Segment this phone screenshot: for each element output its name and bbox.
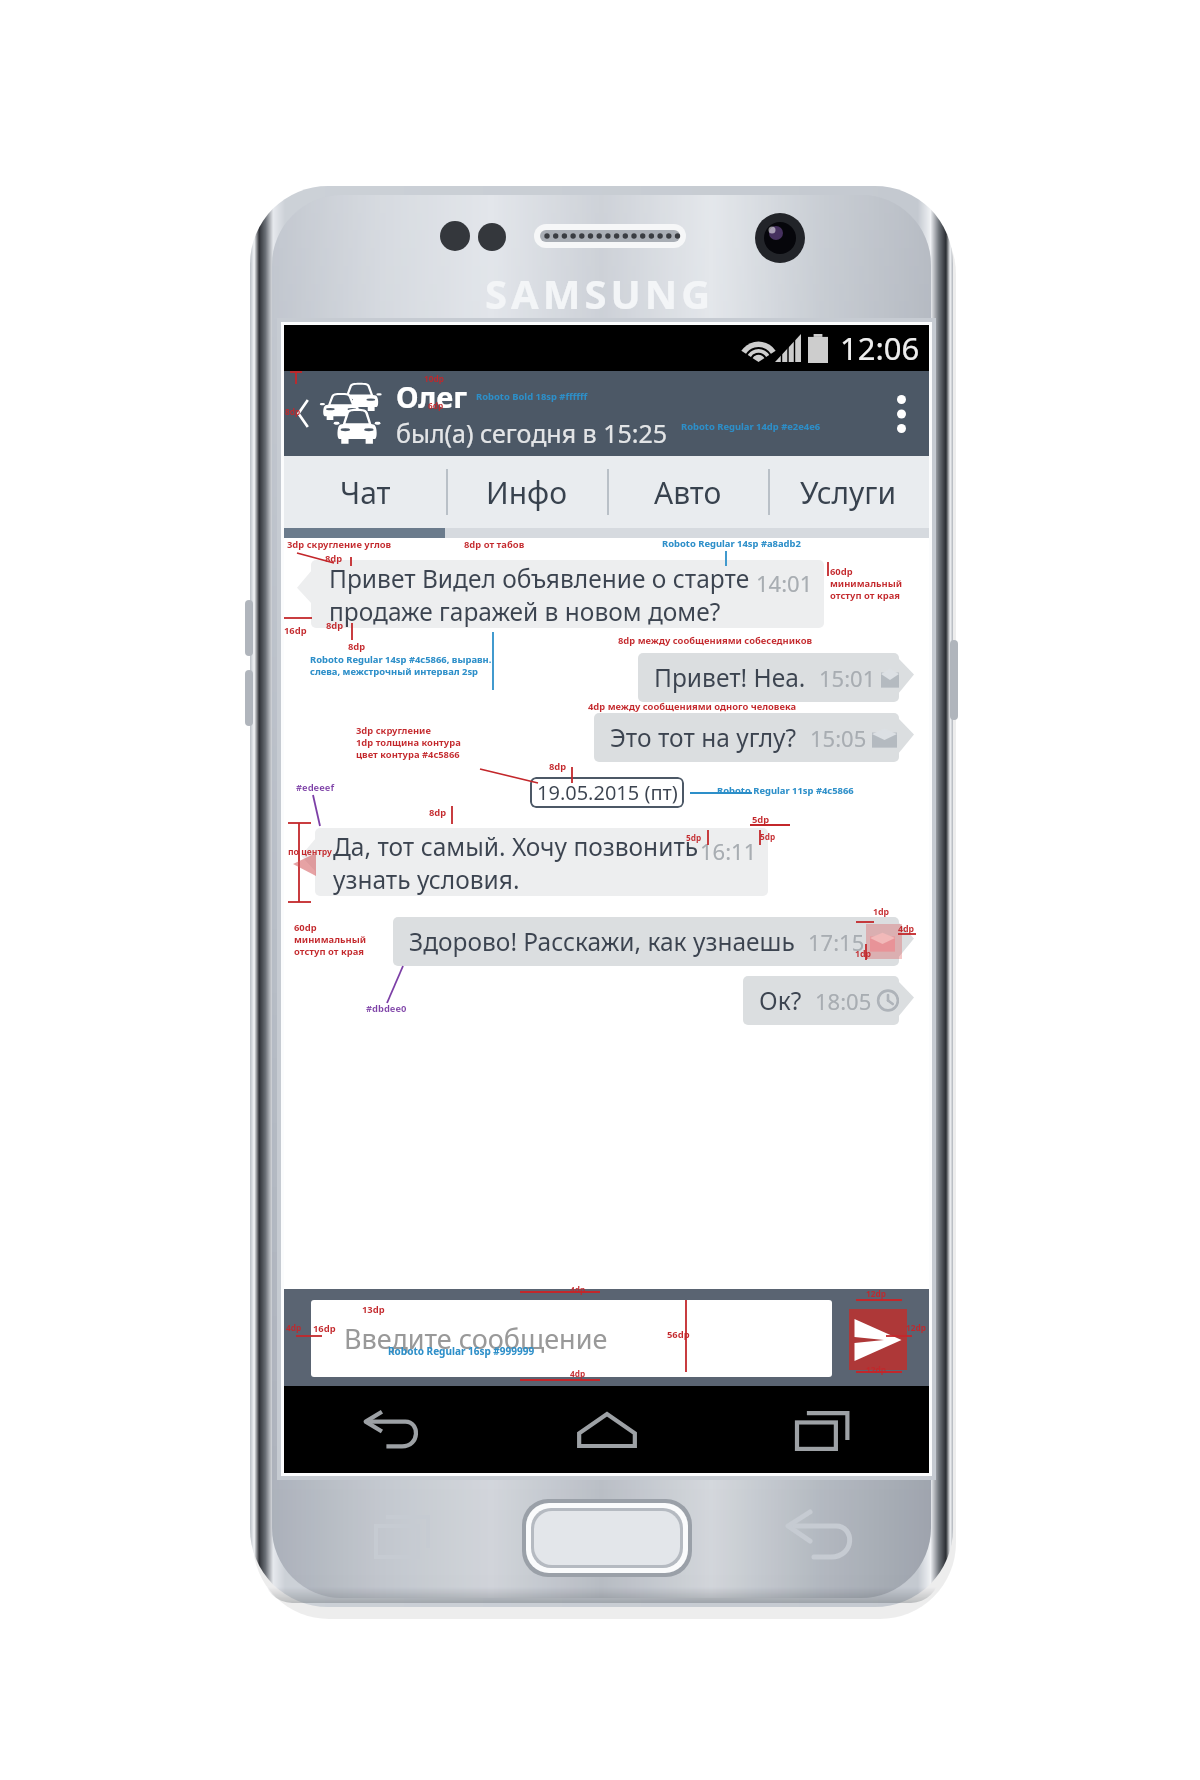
staticText: #dbdee0: [366, 1002, 407, 1015]
staticText: Инфо: [486, 472, 568, 513]
button[interactable]: Recent apps: [714, 1386, 929, 1473]
button[interactable]: Home: [499, 1386, 714, 1473]
staticText: #edeeef: [296, 781, 335, 794]
other: Contact avatar: [322, 383, 380, 445]
staticText: 16dp: [313, 1322, 336, 1335]
staticText: 19.05.2015 (пт): [537, 779, 678, 806]
staticText: Привет Видел объявление о старте: [329, 562, 750, 595]
button[interactable]: Привет Видел объявление о старте: [311, 560, 824, 628]
staticText: 12dp: [866, 1364, 886, 1375]
staticText: Здорово! Расскажи, как узнаешь: [409, 925, 795, 958]
staticText: 4dp: [898, 923, 915, 935]
button[interactable]: Send message: [849, 1309, 907, 1370]
staticText: 4dp: [570, 1284, 586, 1295]
staticText: был(а) сегодня в 15:25: [396, 416, 668, 450]
button[interactable]: Здорово! Расскажи, как узнаешь: [393, 917, 899, 966]
staticText: по центру: [288, 846, 332, 858]
button[interactable]: Ок?: [743, 976, 899, 1025]
button[interactable]: Да, тот самый. Хочу позвонить: [315, 828, 768, 896]
staticText: Привет! Неа.: [654, 661, 806, 694]
staticText: 60dp минимальный отступ от края: [830, 565, 903, 602]
staticText: 1dp: [873, 906, 890, 918]
button[interactable]: Введите сообщение: [311, 1300, 832, 1377]
staticText: Roboto Regular 14sp #a8adb2: [662, 537, 801, 550]
staticText: Чат: [340, 472, 391, 513]
staticText: 6dp: [428, 400, 444, 411]
button[interactable]: Инфо: [446, 456, 607, 528]
staticText: 14:01: [756, 568, 813, 598]
button[interactable]: Чат: [284, 456, 446, 528]
staticText: 8dp: [549, 760, 567, 773]
staticText: Услуги: [800, 472, 897, 513]
staticText: 4dp: [570, 1368, 586, 1379]
staticText: узнать условия.: [333, 863, 520, 896]
staticText: Это тот на углу?: [610, 721, 797, 754]
staticText: 3dp скругление 1dp толщина контура цвет …: [356, 724, 461, 761]
staticText: 4dp: [286, 1322, 302, 1333]
staticText: Roboto Regular 11sp #4c5866: [717, 784, 854, 797]
staticText: Олег: [396, 377, 468, 416]
staticText: 16:11: [700, 836, 757, 866]
staticText: 15:01: [819, 663, 876, 693]
staticText: Ок?: [759, 984, 802, 1017]
staticText: Да, тот самый. Хочу позвонить: [333, 830, 699, 863]
staticText: Введите сообщение: [344, 1320, 608, 1357]
button[interactable]: Back: [284, 1386, 499, 1473]
staticText: 4dp между сообщениями одного человека: [588, 700, 797, 713]
staticText: Roboto Bold 18sp #ffffff: [476, 390, 588, 403]
staticText: 16dp: [284, 624, 307, 637]
staticText: 5dp: [752, 813, 770, 826]
staticText: 8dp: [348, 640, 366, 653]
staticText: 8dp: [285, 406, 301, 417]
button[interactable]: Contact avatar: [322, 371, 873, 456]
staticText: 12dp: [866, 1288, 886, 1299]
staticText: Roboto Regular 14sp #4c5866, выравн. сле…: [310, 653, 492, 678]
staticText: Авто: [654, 472, 722, 513]
button[interactable]: Услуги: [768, 456, 929, 528]
staticText: 10dp: [424, 373, 444, 384]
staticText: 12:06: [840, 327, 920, 369]
button[interactable]: Авто: [607, 456, 768, 528]
staticText: 5dp: [760, 831, 776, 842]
staticText: SAMSUNG: [485, 266, 715, 320]
staticText: Roboto Regular 14dp #e2e4e6: [681, 420, 821, 433]
staticText: Roboto Regular 16sp #999999: [388, 1344, 535, 1358]
staticText: продаже гаражей в новом доме?: [329, 595, 721, 628]
staticText: 18:05: [815, 986, 872, 1016]
staticText: 13dp: [362, 1303, 385, 1316]
staticText: 17:15: [808, 927, 865, 957]
staticText: 8dp: [429, 806, 447, 819]
staticText: 8dp между сообщениями собеседников: [618, 634, 813, 647]
staticText: 3dp скругление углов: [287, 538, 392, 551]
button[interactable]: More options: [873, 371, 929, 456]
staticText: 56dp: [667, 1328, 690, 1341]
staticText: 8dp от табов: [464, 538, 525, 551]
button[interactable]: Back: [284, 371, 322, 456]
staticText: 60dp минимальный отступ от края: [294, 921, 367, 958]
button[interactable]: Привет! Неа.: [638, 653, 899, 702]
button[interactable]: Это тот на углу?: [594, 713, 899, 762]
staticText: 5dp: [686, 832, 702, 843]
staticText: 12dp: [906, 1322, 926, 1333]
staticText: 15:05: [810, 723, 867, 753]
staticText: 1dp: [855, 948, 872, 960]
staticText: 8dp: [326, 619, 344, 632]
staticText: 8dp: [325, 552, 343, 565]
